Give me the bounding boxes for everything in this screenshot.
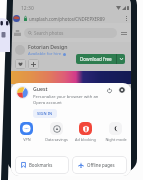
button[interactable]: Download free (76, 54, 125, 64)
button[interactable]: Search photos (24, 28, 117, 38)
staticText: Available for hire (28, 51, 62, 57)
staticText: SIGN IN (37, 111, 53, 116)
button[interactable]: Download options (117, 54, 125, 64)
button[interactable]: Offline pages (72, 156, 127, 174)
button[interactable]: Ad blocking (72, 122, 99, 142)
button[interactable]: Night mode (102, 122, 129, 142)
button[interactable]: Data savings (43, 122, 70, 142)
staticText: Ad blocking (75, 137, 96, 142)
staticText: Guest (33, 85, 48, 92)
button[interactable]: SIGN IN (33, 109, 57, 118)
button[interactable]: More options (124, 16, 129, 21)
staticText: Offline pages (87, 162, 115, 168)
button[interactable]: Add to collection (28, 59, 39, 69)
button[interactable]: VPN (13, 122, 40, 142)
staticText: 12:30 (21, 5, 34, 12)
staticText: Download free (80, 56, 112, 62)
button[interactable]: Bookmarks (15, 156, 69, 174)
staticText: Personalize your browser with an Opera a… (33, 94, 99, 106)
staticText: Search photos (34, 30, 64, 36)
staticText: Data savings (45, 137, 68, 142)
staticText: unsplash.com/photos/CNDFEPXER89 (29, 16, 105, 22)
button[interactable]: Like (15, 59, 26, 69)
staticText: Fotorian Design (28, 43, 68, 50)
button[interactable]: Settings (117, 85, 127, 95)
staticText: Night mode (105, 137, 127, 142)
button[interactable]: Exit (104, 85, 114, 95)
button[interactable]: Menu (120, 31, 128, 36)
staticText: Bookmarks (29, 162, 53, 168)
staticText: VPN (23, 137, 31, 142)
